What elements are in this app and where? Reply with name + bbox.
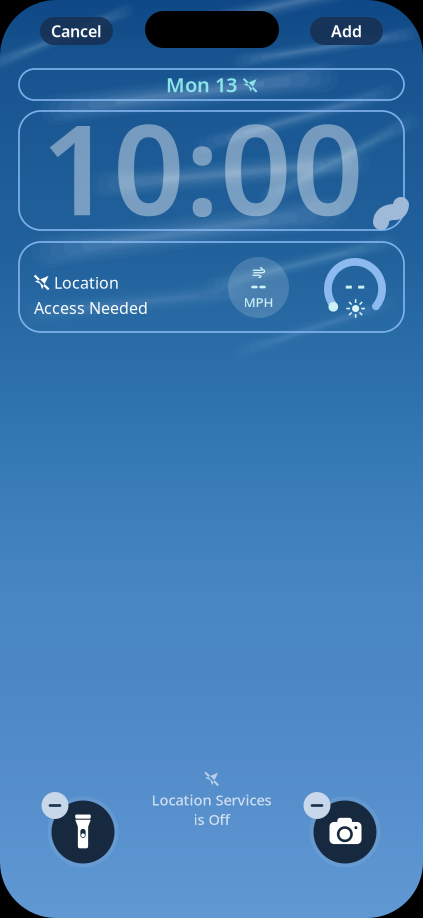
staticText: Mon 13 [166,71,237,98]
staticText: Add [331,20,362,42]
button[interactable]: Edit time style [372,197,410,230]
button[interactable]: Mon 13 [19,69,404,100]
staticText: Location Services [151,790,271,809]
staticText: 10:00 [41,83,364,250]
button[interactable]: Remove Camera [304,791,386,873]
button[interactable]: Cancel [40,17,113,45]
staticText: Access Needed [34,297,148,318]
staticText: Location [54,272,119,293]
staticText: Cancel [51,20,102,42]
button[interactable]: Remove Flashlight [42,791,124,873]
staticText: is Off [193,809,229,829]
staticText: MPH [243,293,273,311]
button[interactable]: Add [310,17,383,45]
